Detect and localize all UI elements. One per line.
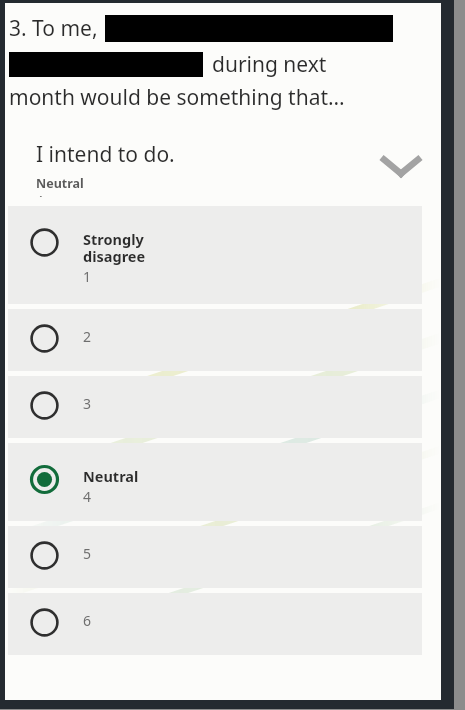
button[interactable]: 6: [8, 593, 422, 655]
staticText: I intend to do.: [36, 140, 175, 169]
staticText: 1: [83, 267, 92, 286]
staticText: 4: [36, 192, 44, 197]
button[interactable]: 3: [8, 376, 422, 438]
staticText: 5: [83, 544, 92, 563]
staticText: 2: [83, 327, 92, 346]
button[interactable]: 2: [8, 309, 422, 371]
staticText: Neutral: [83, 466, 139, 486]
staticText: 4: [83, 487, 92, 506]
staticText: month would be something that…: [9, 83, 345, 112]
button[interactable]: Strongly disagree: [8, 206, 422, 304]
button[interactable]: Collapse: [375, 140, 427, 192]
button[interactable]: 5: [8, 526, 422, 588]
staticText: Strongly disagree: [83, 229, 146, 266]
staticText: 6: [83, 611, 92, 630]
staticText: Neutral: [36, 175, 84, 192]
button[interactable]: Neutral: [8, 443, 422, 521]
button[interactable]: I intend to do.: [5, 136, 441, 199]
staticText: during next: [212, 50, 327, 79]
staticText: 3: [83, 394, 92, 413]
staticText: 3. To me,: [9, 14, 98, 43]
